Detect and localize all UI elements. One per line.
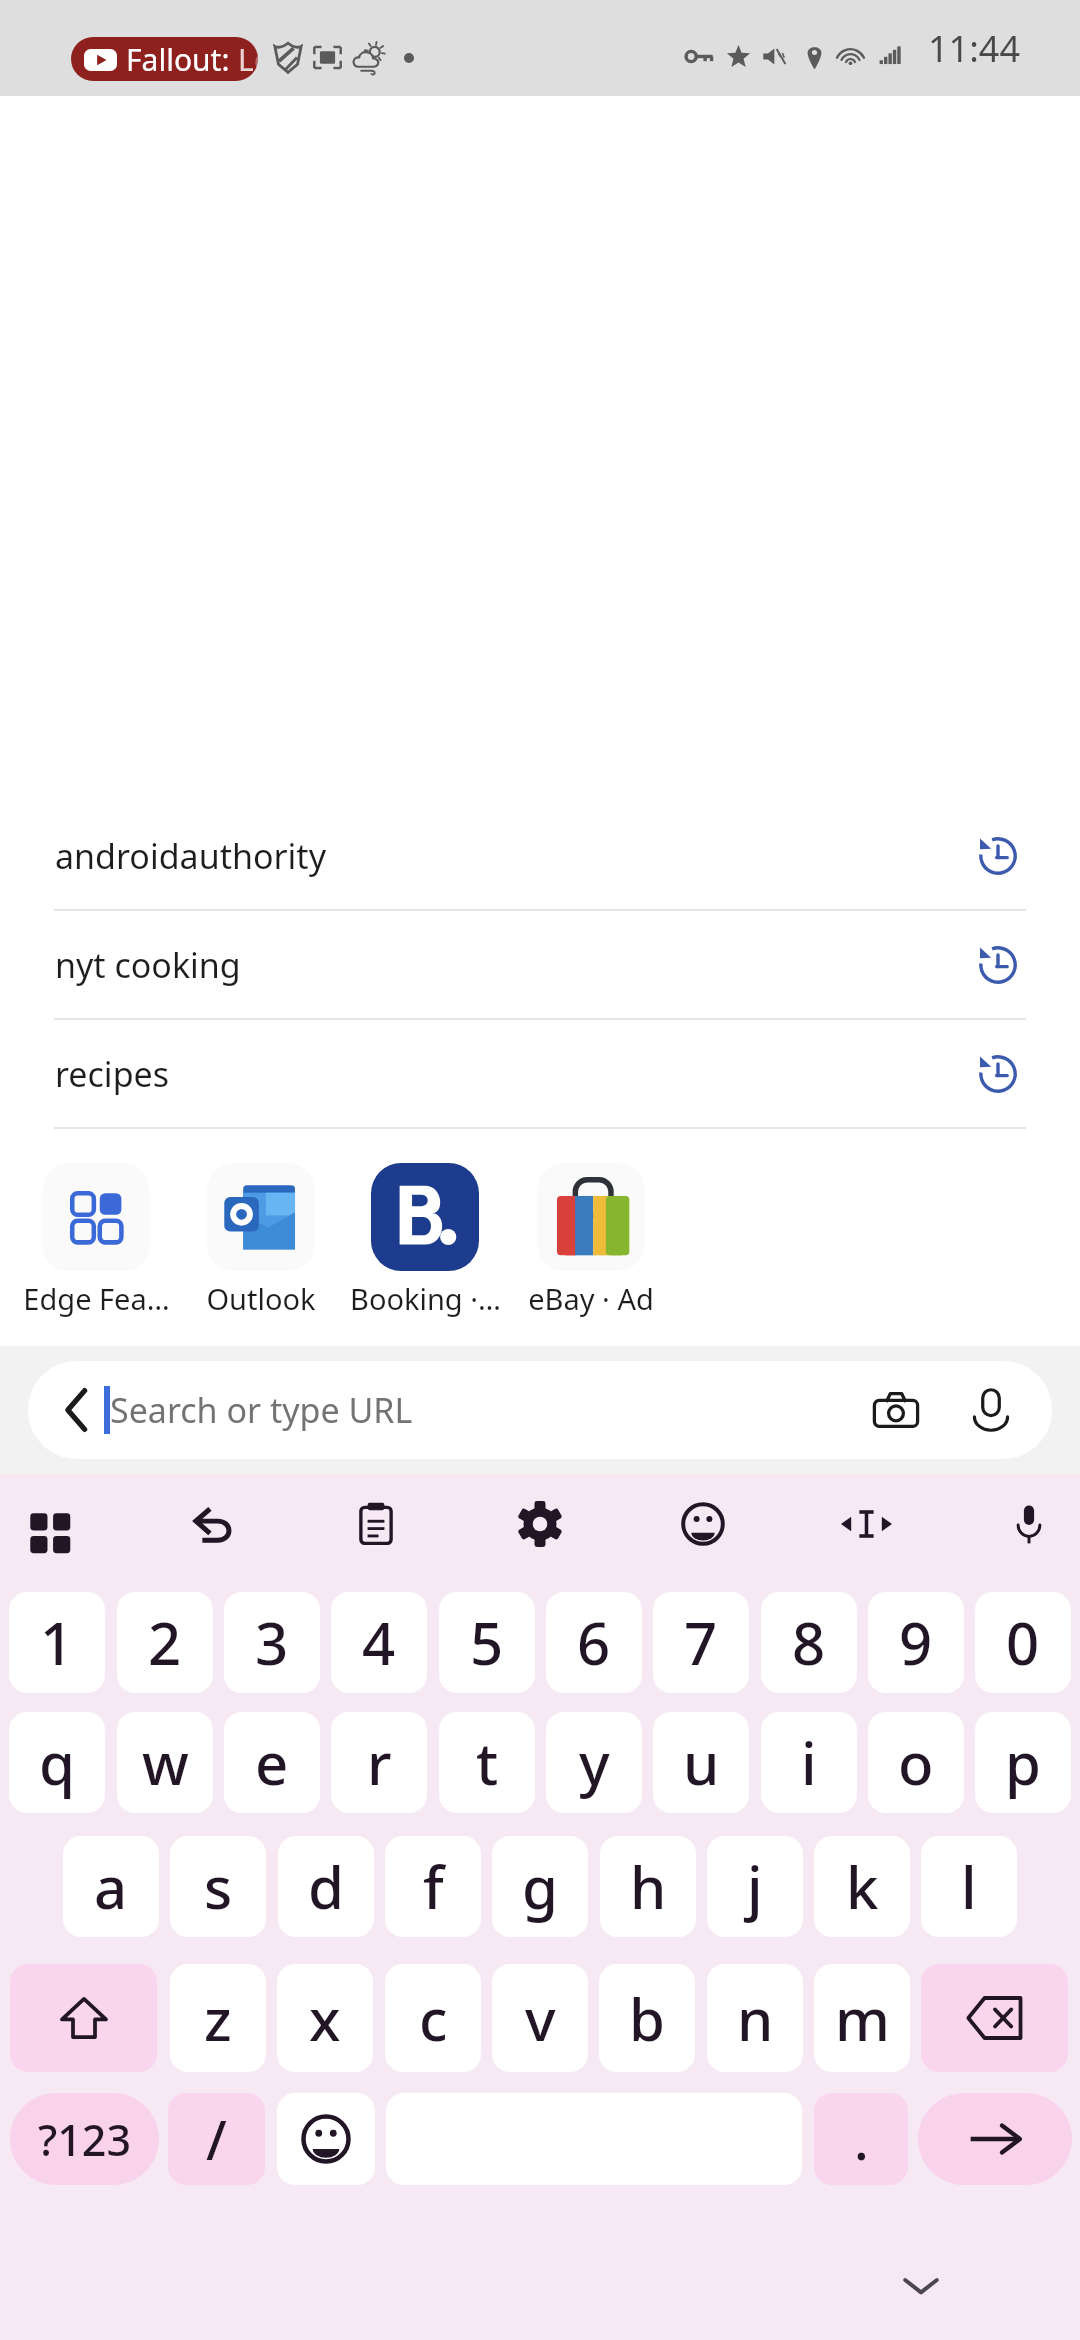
button[interactable]: 3 xyxy=(224,1592,320,1693)
button[interactable]: Shift xyxy=(10,1964,157,2072)
staticText: androidauthority xyxy=(55,833,326,879)
button[interactable]: i xyxy=(761,1712,857,1813)
button[interactable]: j xyxy=(707,1836,803,1937)
staticText: c xyxy=(419,1979,448,2058)
staticText: s xyxy=(204,1847,233,1926)
staticText: y xyxy=(579,1723,610,1802)
staticText: 8 xyxy=(792,1603,826,1682)
button[interactable]: t xyxy=(439,1712,535,1813)
staticText: w xyxy=(142,1723,189,1802)
button[interactable]: Emoji xyxy=(277,2093,375,2185)
button[interactable]: g xyxy=(492,1836,588,1937)
button[interactable]: u xyxy=(653,1712,749,1813)
button[interactable]: d xyxy=(278,1836,374,1937)
button[interactable]: Search with camera xyxy=(859,1373,933,1447)
staticText: / xyxy=(206,2102,227,2176)
staticText: . xyxy=(854,2102,869,2176)
button[interactable]: Edge Fea… xyxy=(42,1163,150,1271)
staticText: o xyxy=(254,39,258,80)
staticText: Edge Fea… xyxy=(23,1279,170,1318)
button[interactable]: androidauthority xyxy=(0,802,1080,911)
button[interactable]: w xyxy=(117,1712,213,1813)
staticText: Booking ·… xyxy=(350,1279,501,1318)
button[interactable]: 0 xyxy=(975,1592,1071,1693)
staticText: 0 xyxy=(1006,1603,1040,1682)
button[interactable]: l xyxy=(921,1836,1017,1937)
button[interactable]: 8 xyxy=(761,1592,857,1693)
button[interactable]: Text editing xyxy=(824,1482,908,1566)
button[interactable]: Undo xyxy=(171,1482,255,1566)
button[interactable]: 6 xyxy=(546,1592,642,1693)
button[interactable]: k xyxy=(814,1836,910,1937)
button[interactable]: c xyxy=(385,1964,481,2072)
button[interactable]: Search or type URL xyxy=(28,1361,1052,1459)
button[interactable]: a xyxy=(63,1836,159,1937)
button[interactable]: p xyxy=(975,1712,1071,1813)
button[interactable]: m xyxy=(814,1964,910,2072)
button[interactable]: x xyxy=(277,1964,373,2072)
staticText: 7 xyxy=(684,1603,718,1682)
button[interactable]: Clipboard xyxy=(334,1482,418,1566)
staticText: r xyxy=(367,1723,392,1802)
staticText: b xyxy=(629,1979,665,2058)
button[interactable]: h xyxy=(600,1836,696,1937)
button[interactable]: recipes xyxy=(0,1020,1080,1129)
staticText: q xyxy=(39,1723,75,1802)
button[interactable]: o xyxy=(868,1712,964,1813)
staticText: i xyxy=(801,1723,817,1802)
button[interactable]: Fallout: xyxy=(71,37,258,81)
staticText: ?123 xyxy=(38,2110,132,2169)
button[interactable]: v xyxy=(492,1964,588,2072)
staticText: nyt cooking xyxy=(55,942,241,988)
button[interactable]: b xyxy=(599,1964,695,2072)
staticText: Fallout: xyxy=(126,39,238,80)
button[interactable]: Voice search xyxy=(954,1373,1028,1447)
button[interactable]: Outlook xyxy=(207,1163,315,1271)
button[interactable]: 2 xyxy=(117,1592,213,1693)
button[interactable]: f xyxy=(385,1836,481,1937)
staticText: g xyxy=(522,1847,558,1926)
staticText: Search or type URL xyxy=(110,1387,413,1433)
staticText: 6 xyxy=(577,1603,611,1682)
staticText: t xyxy=(476,1723,499,1802)
staticText: d xyxy=(308,1847,344,1926)
button[interactable]: z xyxy=(170,1964,266,2072)
staticText: o xyxy=(898,1723,934,1802)
staticText: f xyxy=(423,1847,444,1926)
staticText: L xyxy=(238,39,254,80)
button[interactable]: eBay · Ad xyxy=(537,1163,645,1271)
button[interactable]: 7 xyxy=(653,1592,749,1693)
button[interactable]: ?123 xyxy=(10,2093,159,2185)
button[interactable]: y xyxy=(546,1712,642,1813)
staticText: 9 xyxy=(899,1603,933,1682)
staticText: k xyxy=(846,1847,879,1926)
button[interactable]: . xyxy=(814,2093,908,2185)
button[interactable]: s xyxy=(170,1836,266,1937)
staticText: e xyxy=(255,1723,289,1802)
button[interactable]: n xyxy=(707,1964,803,2072)
button[interactable]: Voice input xyxy=(987,1482,1071,1566)
button[interactable]: 1 xyxy=(9,1592,105,1693)
button[interactable]: r xyxy=(331,1712,427,1813)
button[interactable]: / xyxy=(168,2093,265,2185)
button[interactable]: Hide keyboard xyxy=(891,2256,951,2316)
button[interactable]: Emoji xyxy=(661,1482,745,1566)
button[interactable]: 4 xyxy=(331,1592,427,1693)
button[interactable]: Backspace xyxy=(921,1964,1068,2072)
staticText: p xyxy=(1005,1723,1041,1802)
staticText: h xyxy=(630,1847,667,1926)
button[interactable]: e xyxy=(224,1712,320,1813)
button[interactable]: Settings xyxy=(498,1482,582,1566)
button[interactable]: nyt cooking xyxy=(0,911,1080,1020)
button[interactable]: 9 xyxy=(868,1592,964,1693)
staticText: 4 xyxy=(362,1603,396,1682)
button[interactable]: 5 xyxy=(439,1592,535,1693)
staticText: Outlook xyxy=(206,1279,316,1318)
button[interactable]: Apps xyxy=(8,1482,92,1566)
button[interactable]: Booking ·… xyxy=(371,1163,479,1271)
button[interactable]: Go xyxy=(918,2093,1072,2185)
button[interactable]: q xyxy=(9,1712,105,1813)
staticText: 5 xyxy=(470,1603,504,1682)
staticText: u xyxy=(683,1723,720,1802)
